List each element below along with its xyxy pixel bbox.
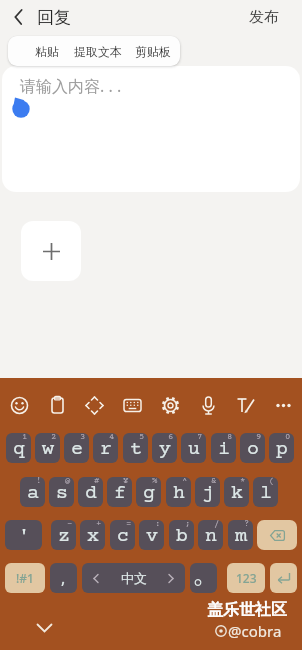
button[interactable]: o xyxy=(240,433,265,463)
button[interactable]: s xyxy=(49,477,74,507)
button[interactable] xyxy=(270,563,297,593)
staticText: n xyxy=(205,525,217,547)
button[interactable] xyxy=(117,390,147,420)
staticText: a xyxy=(27,482,39,504)
staticText: 盖乐世社区 xyxy=(207,600,287,620)
button[interactable] xyxy=(230,390,260,420)
staticText: r xyxy=(100,438,112,460)
button[interactable]: 123 xyxy=(227,563,265,593)
staticText: g xyxy=(143,482,155,504)
staticText: 剪贴板 xyxy=(135,44,171,59)
staticText: @ xyxy=(65,477,71,486)
button[interactable]: w xyxy=(35,433,60,463)
staticText: b xyxy=(176,525,188,547)
staticText: q xyxy=(13,438,25,460)
staticText: j xyxy=(202,482,214,504)
staticText: x xyxy=(87,525,99,547)
button[interactable] xyxy=(257,520,297,550)
staticText: 中文 xyxy=(121,570,147,586)
staticText: d xyxy=(85,482,97,504)
button[interactable]: 中文 xyxy=(82,563,185,593)
button[interactable]: p xyxy=(269,433,294,463)
staticText: k xyxy=(231,482,243,504)
button[interactable]: g xyxy=(136,477,161,507)
button[interactable]: 粘贴 xyxy=(20,36,74,66)
staticText: 123 xyxy=(236,570,257,586)
button[interactable]: h xyxy=(166,477,191,507)
button[interactable]: f xyxy=(107,477,132,507)
staticText: 1 xyxy=(22,433,28,442)
staticText: 0 xyxy=(285,433,291,442)
button[interactable]: v xyxy=(139,520,164,550)
staticText: 3 xyxy=(80,433,86,442)
button[interactable]: j xyxy=(195,477,220,507)
button[interactable] xyxy=(268,390,298,420)
staticText: 8 xyxy=(227,433,233,442)
button[interactable]: 发布 xyxy=(236,2,292,32)
button[interactable]: q xyxy=(6,433,31,463)
staticText: 粘贴 xyxy=(35,44,59,59)
button[interactable]: i xyxy=(211,433,236,463)
button[interactable]: , xyxy=(50,563,77,593)
button[interactable]: c xyxy=(110,520,135,550)
staticText: u xyxy=(188,438,200,460)
button[interactable]: !#1 xyxy=(5,563,45,593)
staticText: y xyxy=(159,438,171,460)
button[interactable]: 提取文本 xyxy=(70,36,126,66)
button[interactable]: d xyxy=(78,477,103,507)
staticText: # xyxy=(94,477,100,486)
button[interactable]: ' xyxy=(5,520,42,550)
button[interactable]: l xyxy=(253,477,278,507)
staticText: / xyxy=(214,520,220,529)
button[interactable] xyxy=(21,221,81,281)
button[interactable]: b xyxy=(169,520,194,550)
staticText: 4 xyxy=(109,433,115,442)
button[interactable] xyxy=(42,390,72,420)
button[interactable]: u xyxy=(181,433,206,463)
staticText: i xyxy=(218,438,230,460)
button[interactable] xyxy=(190,563,217,593)
button[interactable] xyxy=(4,390,34,420)
staticText: ¥ xyxy=(123,477,129,486)
button[interactable]: n xyxy=(198,520,223,550)
button[interactable] xyxy=(193,390,223,420)
staticText: o xyxy=(247,438,259,460)
button[interactable]: a xyxy=(20,477,45,507)
staticText: 5 xyxy=(139,433,145,442)
staticText: - xyxy=(67,520,73,529)
button[interactable]: y xyxy=(152,433,177,463)
staticText: h xyxy=(173,482,185,504)
staticText: p xyxy=(276,438,288,460)
staticText: , xyxy=(61,567,66,589)
button[interactable] xyxy=(29,616,59,640)
staticText: * xyxy=(240,477,246,486)
button[interactable]: m xyxy=(228,520,253,550)
staticText: 9 xyxy=(256,433,262,442)
staticText: & xyxy=(211,477,217,486)
staticText: ; xyxy=(185,520,191,529)
button[interactable]: x xyxy=(80,520,105,550)
staticText: ( xyxy=(269,477,275,486)
staticText: z xyxy=(58,525,70,547)
button[interactable] xyxy=(5,3,33,31)
staticText: s xyxy=(56,482,68,504)
button[interactable] xyxy=(79,390,109,420)
staticText: c xyxy=(117,525,129,547)
staticText: 请输入内容. . . xyxy=(20,75,122,97)
button[interactable]: 剪贴板 xyxy=(128,36,178,66)
button[interactable]: r xyxy=(93,433,118,463)
staticText: ^ xyxy=(182,477,188,486)
staticText: ! xyxy=(36,477,42,486)
staticText: v xyxy=(146,525,158,547)
button[interactable]: 请输入内容. . . xyxy=(2,66,300,192)
staticText: 7 xyxy=(197,433,203,442)
staticText: : xyxy=(155,520,161,529)
staticText: 提取文本 xyxy=(74,44,122,59)
staticText: ' xyxy=(18,525,30,547)
button[interactable]: e xyxy=(64,433,89,463)
button[interactable]: z xyxy=(51,520,76,550)
button[interactable] xyxy=(155,390,185,420)
staticText: f xyxy=(114,482,126,504)
button[interactable]: k xyxy=(224,477,249,507)
button[interactable]: t xyxy=(123,433,148,463)
